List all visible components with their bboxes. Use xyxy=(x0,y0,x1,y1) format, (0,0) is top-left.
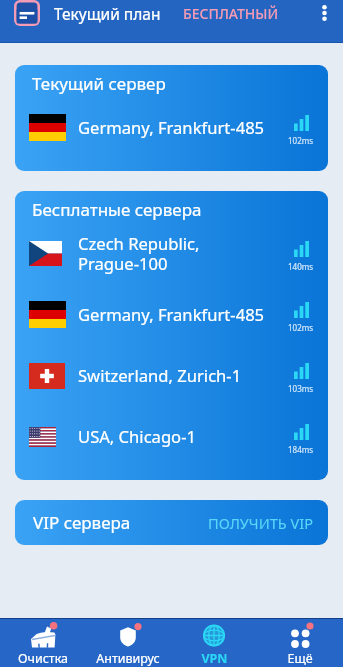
staticText: Очистка xyxy=(18,650,68,667)
staticText: Germany, Frankfurt-485 xyxy=(78,116,265,139)
other: VPN xyxy=(200,621,228,649)
staticText: Текущий план xyxy=(54,3,161,24)
staticText: БЕСПЛАТНЫЙ xyxy=(183,4,279,23)
other: Cleaner xyxy=(29,621,57,649)
staticText: Ещё xyxy=(287,650,313,667)
staticText: 103ms xyxy=(288,383,314,394)
staticText: USA, Chicago-1 xyxy=(78,425,196,448)
button[interactable]: Current plan xyxy=(13,0,40,26)
button[interactable]: USA, Chicago-1 xyxy=(15,406,328,467)
staticText: 184ms xyxy=(288,444,314,455)
staticText: Germany, Frankfurt-485 xyxy=(78,303,265,326)
staticText: Антивирус xyxy=(96,650,160,667)
button[interactable]: Germany, Frankfurt-485 xyxy=(15,284,328,345)
staticText: ПОЛУЧИТЬ VIP xyxy=(208,513,313,533)
button[interactable]: VIP сервера xyxy=(15,500,328,545)
staticText: Бесплатные сервера xyxy=(32,198,202,221)
staticText: VIP сервера xyxy=(33,511,131,534)
staticText: Switzerland, Zurich-1 xyxy=(78,364,242,387)
button[interactable]: Czech Republic, Prague-100 xyxy=(15,223,328,284)
staticText: Текущий сервер xyxy=(32,72,166,95)
other: More xyxy=(286,621,314,649)
staticText: 102ms xyxy=(288,135,314,146)
staticText: Czech Republic, Prague-100 xyxy=(78,232,200,275)
staticText: VPN xyxy=(201,650,228,667)
button[interactable]: Switzerland, Zurich-1 xyxy=(15,345,328,406)
button[interactable]: More options xyxy=(311,0,337,26)
button[interactable]: Cleaner xyxy=(0,619,85,667)
button[interactable]: Germany, Frankfurt-485 xyxy=(15,97,328,158)
button[interactable]: More xyxy=(257,619,343,667)
other: Antivirus xyxy=(114,621,142,649)
button[interactable]: VPN xyxy=(171,619,257,667)
staticText: 102ms xyxy=(288,322,314,333)
staticText: 140ms xyxy=(288,261,314,272)
button[interactable]: Antivirus xyxy=(85,619,171,667)
